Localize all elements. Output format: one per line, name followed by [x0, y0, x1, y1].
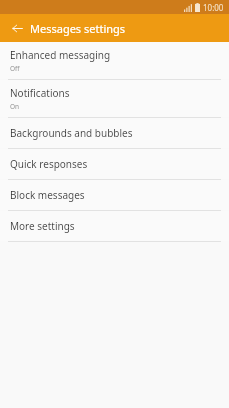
staticText: On	[10, 102, 20, 111]
button[interactable]: Notifications	[0, 80, 229, 117]
button[interactable]: More settings	[0, 211, 229, 241]
staticText: 10:00	[203, 2, 224, 13]
staticText: Messages settings	[30, 21, 126, 36]
staticText: Notifications	[10, 86, 70, 100]
staticText: More settings	[10, 219, 75, 233]
staticText: Block messages	[10, 188, 85, 202]
button[interactable]: Backgrounds and bubbles	[0, 118, 229, 148]
button[interactable]: Enhanced messaging	[0, 42, 229, 79]
button[interactable]: Navigate up	[6, 17, 28, 39]
staticText: Enhanced messaging	[10, 48, 111, 62]
button[interactable]: Quick responses	[0, 149, 229, 179]
staticText: Off	[10, 64, 20, 73]
button[interactable]: Block messages	[0, 180, 229, 210]
staticText: Backgrounds and bubbles	[10, 126, 133, 140]
staticText: Quick responses	[10, 157, 88, 171]
